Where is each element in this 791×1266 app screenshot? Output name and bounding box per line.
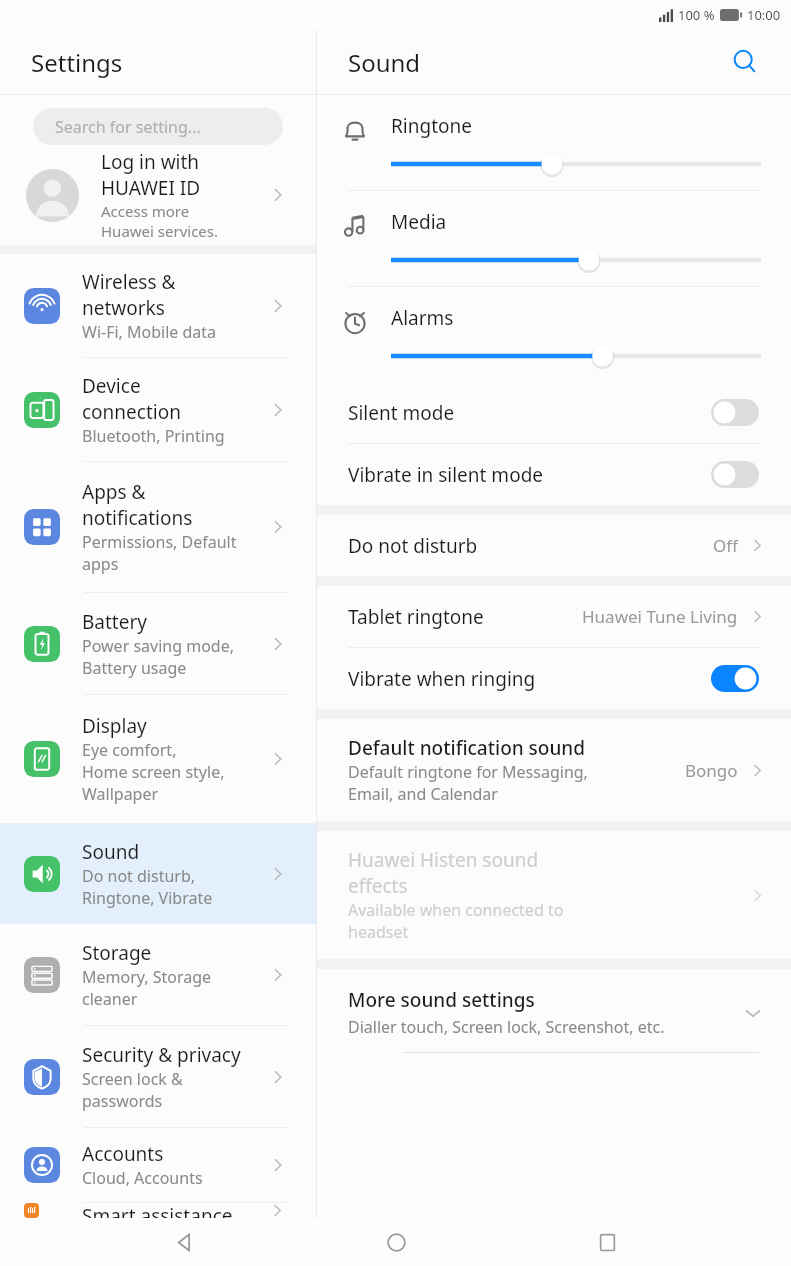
staticText: Storage <box>82 940 152 966</box>
staticText: Vibrate when ringing <box>348 666 711 692</box>
staticText: Screen lock & <box>82 1068 183 1090</box>
staticText: Default ringtone for Messaging, <box>348 761 588 783</box>
button[interactable]: Device <box>0 358 316 462</box>
staticText: Wi-Fi, Mobile data <box>82 321 217 343</box>
staticText: Email, and Calendar <box>348 783 498 805</box>
button[interactable]: Back <box>156 1218 212 1266</box>
staticText: Smart assistance <box>82 1203 233 1218</box>
button[interactable]: Default notification sound <box>348 735 765 805</box>
button[interactable]: Apps & <box>0 462 316 593</box>
button[interactable]: Battery <box>0 593 316 695</box>
staticText: Cloud, Accounts <box>82 1167 203 1189</box>
staticText: Vibrate in silent mode <box>348 462 711 488</box>
staticText: Search for setting... <box>55 116 201 138</box>
staticText: notifications <box>82 505 193 531</box>
staticText: headset <box>348 921 409 943</box>
button[interactable]: Storage <box>0 924 316 1026</box>
button[interactable]: Accounts <box>0 1128 316 1203</box>
staticText: passwords <box>82 1090 163 1112</box>
button[interactable]: More sound settings <box>317 969 791 1053</box>
staticText: Sound <box>82 839 140 865</box>
button[interactable]: Display <box>0 695 316 823</box>
staticText: Wireless & <box>82 269 176 295</box>
staticText: Default notification sound <box>348 735 586 761</box>
staticText: Power saving mode, <box>82 635 234 657</box>
staticText: Security & privacy <box>82 1042 241 1068</box>
staticText: Log in with <box>101 149 200 175</box>
staticText: Sound <box>348 46 421 79</box>
button[interactable]: Smart assistance <box>0 1203 316 1218</box>
staticText: Accounts <box>82 1141 164 1167</box>
staticText: Battery <box>82 609 147 635</box>
staticText: Memory, Storage <box>82 966 212 988</box>
button[interactable]: Media <box>317 191 791 287</box>
staticText: Display <box>82 713 147 739</box>
button[interactable]: Ringtone <box>317 95 791 191</box>
staticText: HUAWEI ID <box>101 175 201 201</box>
staticText: Dialler touch, Screen lock, Screenshot, … <box>348 1016 665 1038</box>
staticText: Bongo <box>685 759 738 782</box>
staticText: Bluetooth, Printing <box>82 425 225 447</box>
staticText: Settings <box>31 46 123 79</box>
staticText: Silent mode <box>348 400 711 426</box>
staticText: networks <box>82 295 165 321</box>
staticText: Home screen style, <box>82 761 225 783</box>
button[interactable]: Wireless & <box>0 254 316 358</box>
staticText: Ringtone <box>391 113 472 139</box>
staticText: Do not disturb <box>348 533 713 559</box>
staticText: Do not disturb, <box>82 865 196 887</box>
staticText: connection <box>82 399 181 425</box>
staticText: Ringtone, Vibrate <box>82 887 213 909</box>
staticText: Tablet ringtone <box>348 604 582 630</box>
staticText: cleaner <box>82 988 138 1010</box>
staticText: Access more <box>101 201 190 221</box>
staticText: Media <box>391 209 447 235</box>
button[interactable]: Sound <box>0 823 316 924</box>
staticText: effects <box>348 873 408 899</box>
staticText: Wallpaper <box>82 783 159 805</box>
staticText: 10:00 <box>747 6 781 24</box>
staticText: Off <box>713 534 738 557</box>
staticText: Battery usage <box>82 657 187 679</box>
button[interactable]: Search <box>723 40 767 84</box>
button[interactable]: Search for setting... <box>33 108 283 145</box>
button[interactable]: Silent mode <box>317 382 791 444</box>
button[interactable]: Alarms <box>317 287 791 382</box>
button[interactable]: Security & privacy <box>0 1026 316 1128</box>
button[interactable]: Vibrate when ringing <box>317 648 791 709</box>
staticText: Available when connected to <box>348 899 564 921</box>
staticText: Alarms <box>391 305 454 331</box>
button[interactable]: Log in with <box>0 145 316 245</box>
staticText: Device <box>82 373 141 399</box>
staticText: Apps & <box>82 479 146 505</box>
staticText: Huawei Histen sound <box>348 847 539 873</box>
staticText: Eye comfort, <box>82 739 177 761</box>
button[interactable]: Do not disturb <box>317 515 791 576</box>
staticText: apps <box>82 553 119 575</box>
staticText: Huawei Tune Living <box>582 605 738 628</box>
button[interactable]: Home <box>368 1218 424 1266</box>
staticText: Permissions, Default <box>82 531 237 553</box>
staticText: More sound settings <box>348 987 535 1013</box>
staticText: 100 % <box>678 6 715 24</box>
button[interactable]: Huawei Histen sound <box>348 847 765 943</box>
button[interactable]: Vibrate in silent mode <box>317 444 791 505</box>
button[interactable]: Tablet ringtone <box>317 586 791 648</box>
button[interactable]: Recents <box>579 1218 635 1266</box>
staticText: Huawei services. <box>101 221 219 241</box>
